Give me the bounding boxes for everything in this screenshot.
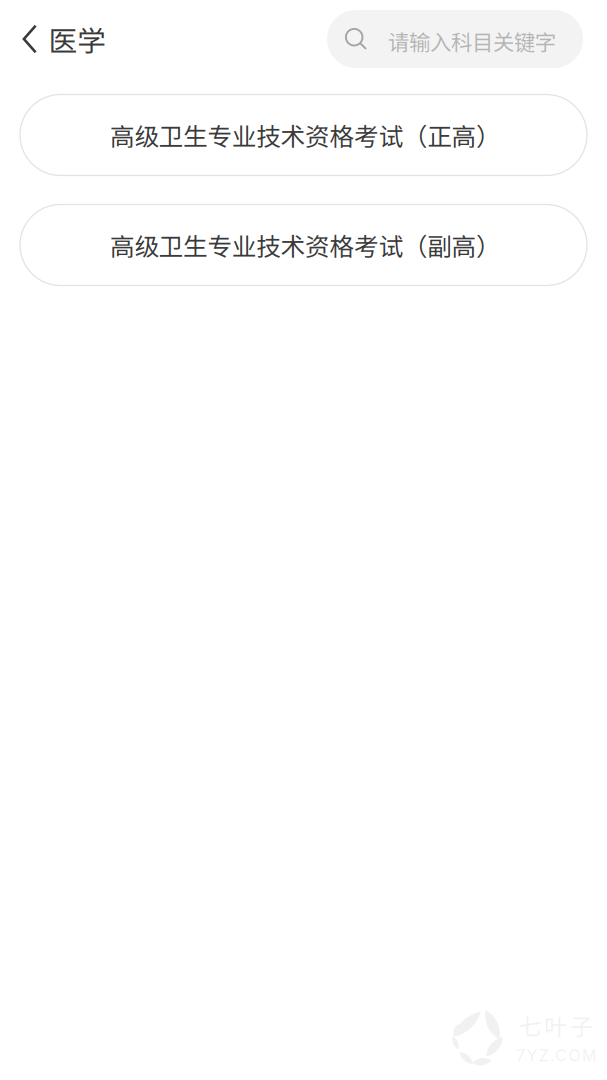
button[interactable]: 高级卫生专业技术资格考试（副高） — [20, 204, 587, 285]
button[interactable]: 高级卫生专业技术资格考试（正高） — [20, 94, 587, 175]
staticText: 高级卫生专业技术资格考试（正高） — [110, 117, 501, 153]
staticText: 请输入科目关键字 — [388, 26, 556, 56]
button[interactable]: Back — [11, 15, 48, 63]
staticText: 高级卫生专业技术资格考试（副高） — [110, 227, 501, 263]
button[interactable]: Search subjects — [327, 10, 583, 68]
staticText: 医学 — [48, 18, 106, 60]
staticText: 七叶子 — [518, 1009, 593, 1042]
staticText: 7YZ.COM — [516, 1046, 596, 1065]
